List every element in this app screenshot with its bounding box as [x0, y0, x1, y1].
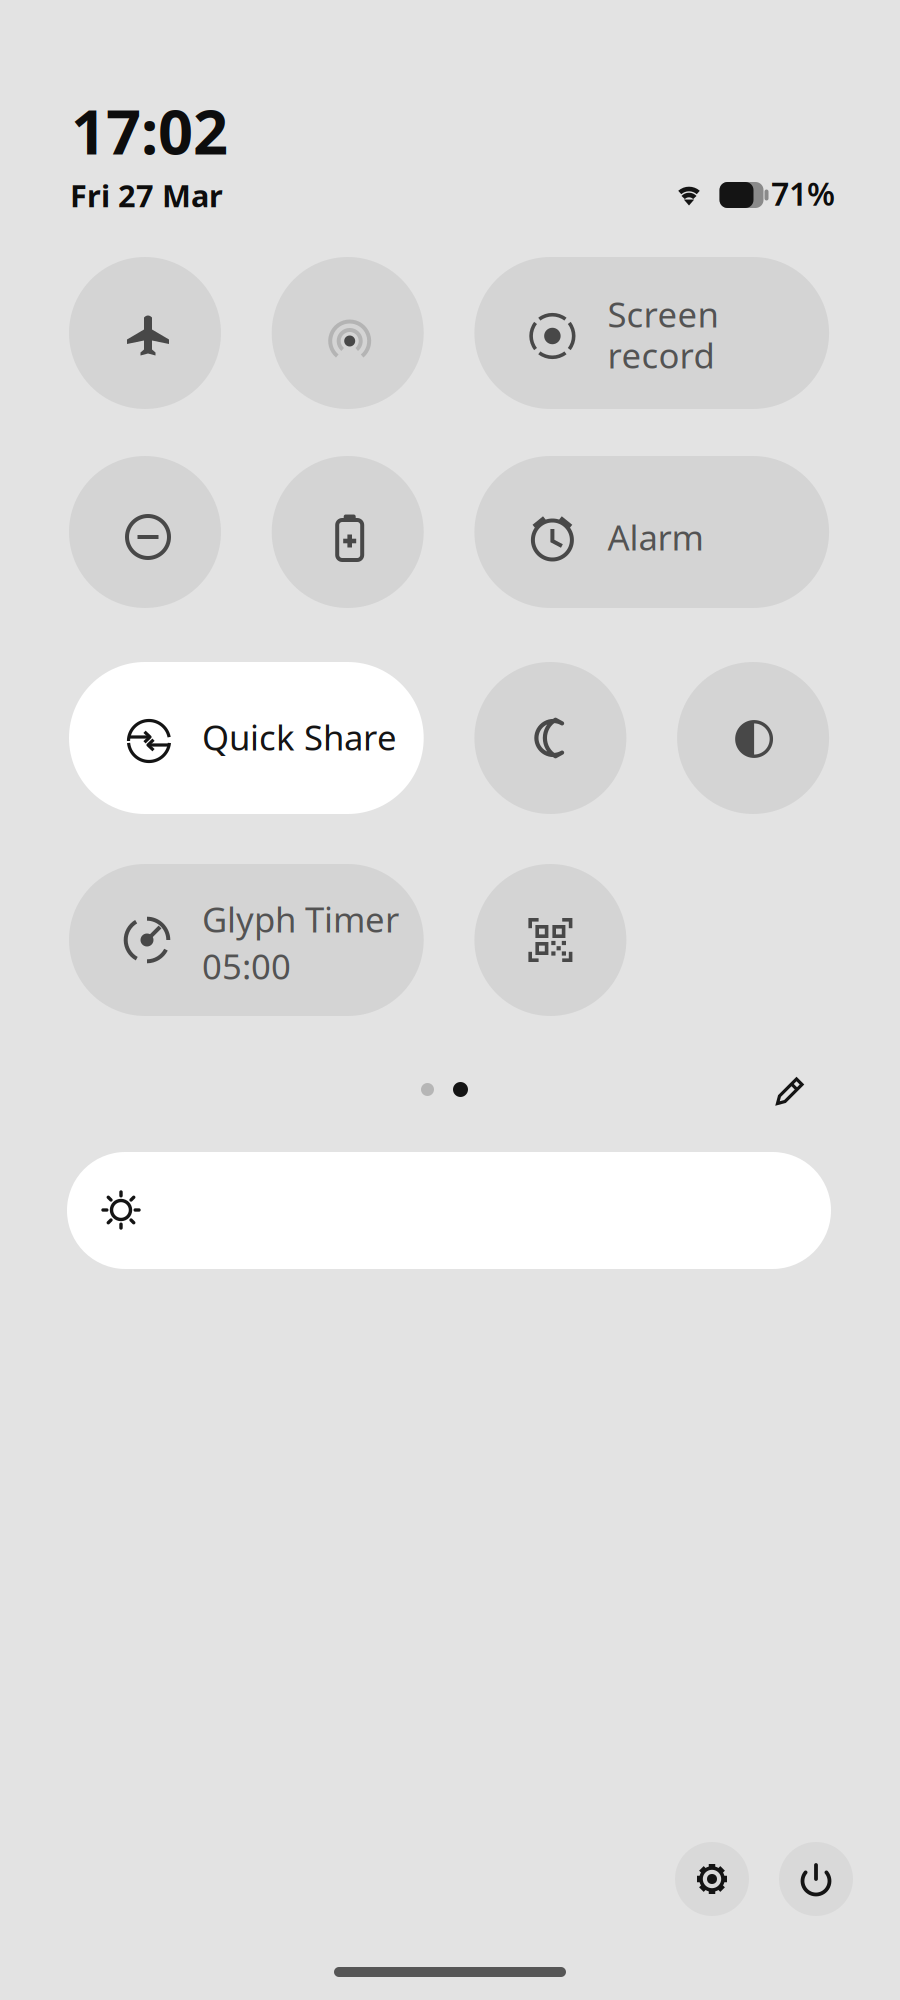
button[interactable]: Battery saver: [272, 456, 424, 608]
staticText: Alarm: [607, 514, 703, 560]
staticText: Glyph Timer: [202, 896, 399, 942]
button[interactable]: Alarm: [474, 456, 829, 608]
button[interactable]: Quick Share: [69, 662, 424, 814]
staticText: 71%: [771, 172, 835, 214]
staticText: 17:02: [71, 90, 228, 171]
button[interactable]: Do not disturb: [69, 456, 221, 608]
button[interactable]: Edit tiles: [766, 1067, 814, 1115]
staticText: Screen: [607, 291, 718, 337]
button[interactable]: Scan QR code: [474, 864, 626, 1016]
button[interactable]: Dark mode: [474, 662, 626, 814]
button[interactable]: Contrast: [677, 662, 829, 814]
button[interactable]: Glyph Timer: [69, 864, 424, 1016]
staticText: Quick Share: [202, 714, 397, 760]
button[interactable]: Airplane mode: [69, 257, 221, 409]
button[interactable]: Settings: [675, 1842, 749, 1916]
button[interactable]: Screen: [474, 257, 829, 409]
staticText: record: [607, 332, 714, 378]
button[interactable]: Hotspot: [272, 257, 424, 409]
button[interactable]: Power: [779, 1842, 853, 1916]
staticText: 05:00: [202, 943, 291, 989]
staticText: Fri 27 Mar: [70, 175, 223, 216]
button[interactable]: Brightness: [67, 1152, 831, 1269]
